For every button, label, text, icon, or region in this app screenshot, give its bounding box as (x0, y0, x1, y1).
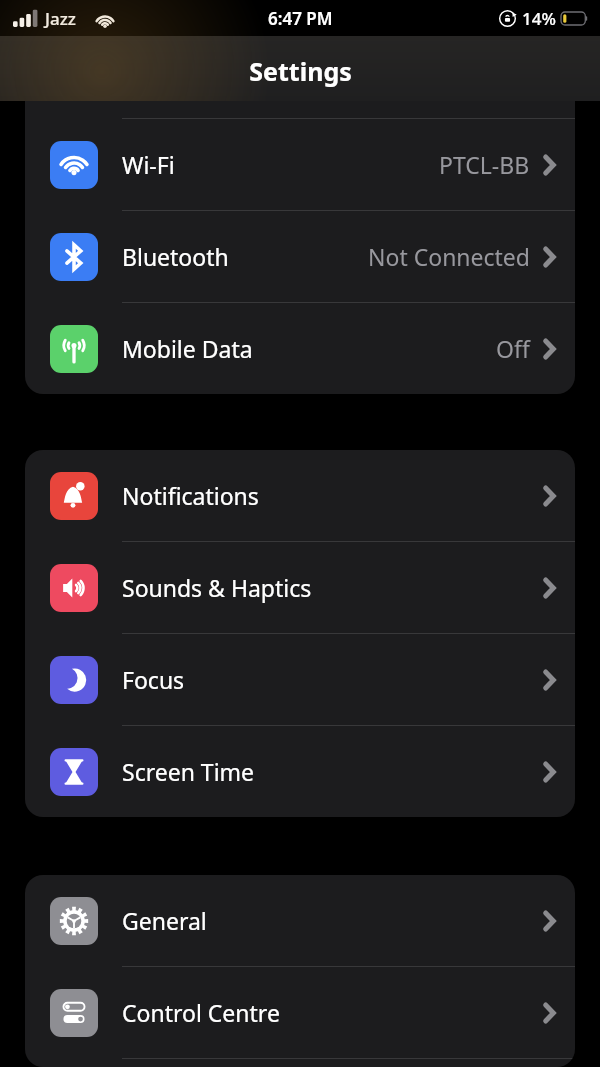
staticText: Jazz (45, 7, 76, 30)
staticText: General (122, 905, 207, 936)
button[interactable]: Notifications (25, 450, 575, 541)
staticText: Not Connected (368, 241, 530, 272)
button[interactable]: Sounds & Haptics (25, 542, 575, 633)
button[interactable]: Control Centre (25, 967, 575, 1058)
staticText: 14% (522, 7, 556, 30)
staticText: Sounds & Haptics (122, 572, 312, 603)
button[interactable]: Focus (25, 634, 575, 725)
staticText: Mobile Data (122, 333, 253, 364)
button[interactable]: Wi-Fi (25, 119, 575, 210)
staticText: Focus (122, 664, 185, 695)
staticText: Screen Time (122, 756, 255, 787)
button[interactable]: Screen Time (25, 726, 575, 817)
staticText: Control Centre (122, 997, 280, 1028)
staticText: 6:47 PM (268, 7, 333, 30)
staticText: Settings (249, 54, 352, 88)
staticText: PTCL-BB (439, 149, 530, 180)
staticText: Bluetooth (122, 241, 229, 272)
button[interactable]: General (25, 875, 575, 966)
staticText: Off (496, 333, 530, 364)
staticText: Wi-Fi (122, 149, 175, 180)
button[interactable]: Mobile Data (25, 303, 575, 394)
button[interactable]: Bluetooth (25, 211, 575, 302)
staticText: Notifications (122, 480, 259, 511)
